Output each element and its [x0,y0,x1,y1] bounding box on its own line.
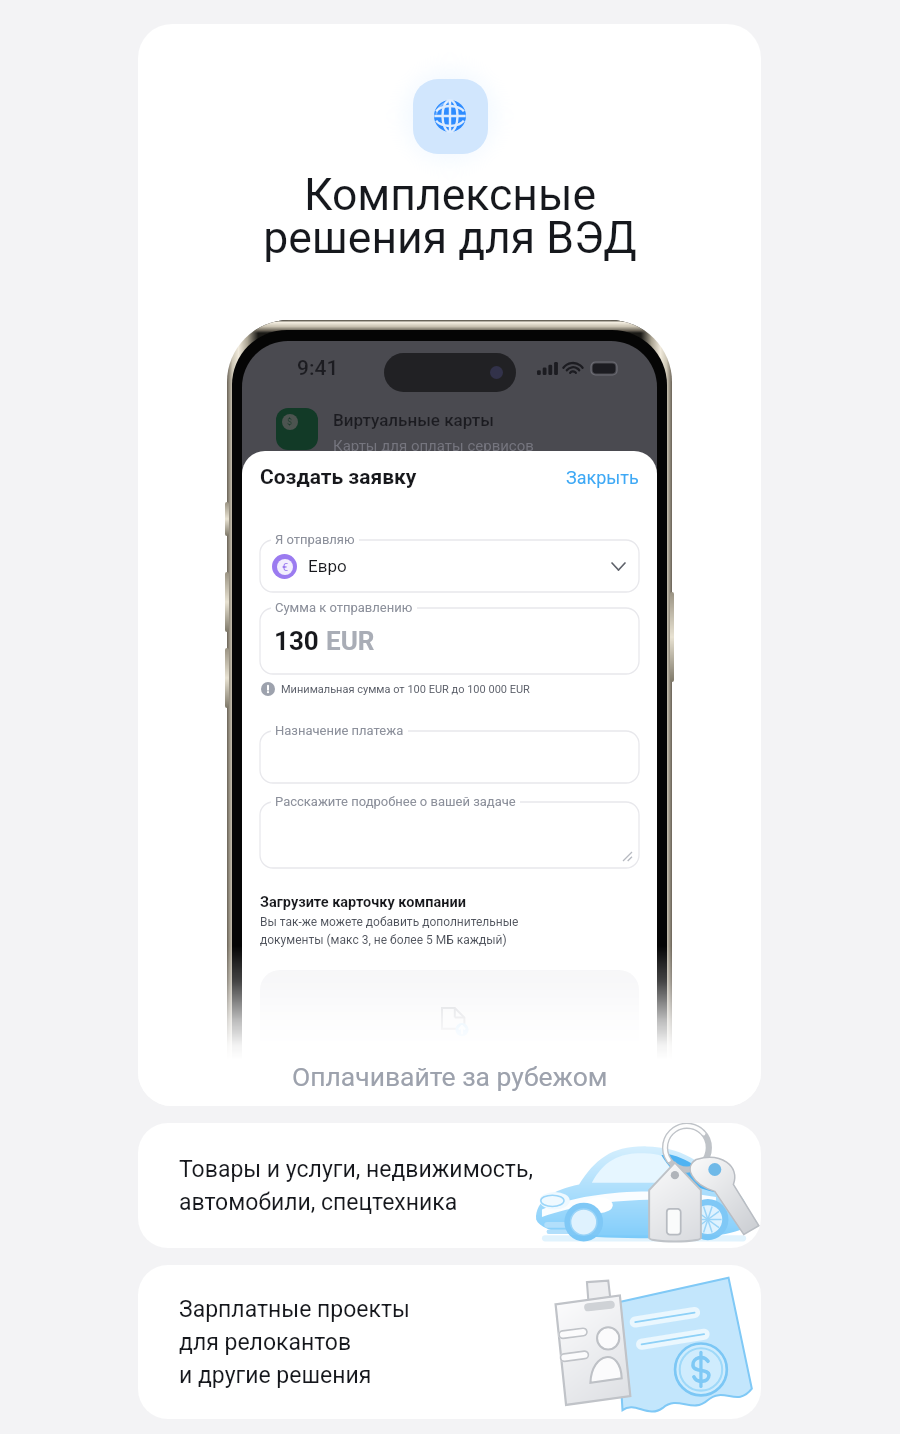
staticText: 130 [274,626,326,656]
staticText: Карты для оплаты сервисов [333,437,534,455]
staticText: Евро [308,556,347,576]
staticText: Виртуальные карты [333,410,494,430]
staticText: Минимальная сумма от 100 EUR до 100 000 … [281,683,530,696]
staticText: Создать заявку [260,465,417,490]
staticText: Вы так-же можете добавить дополнительные… [260,915,519,947]
button[interactable]: Товары и услуги, недвижимость, автомобил… [138,1123,761,1248]
staticText: $ [287,417,293,428]
button[interactable]: Зарплатные проекты для релокантов и друг… [138,1265,761,1419]
staticText: 9:41 [297,356,339,381]
staticText: Расскажите подробнее о вашей задаче [275,794,516,809]
staticText: Сумма к отправлению [275,600,413,615]
staticText: Зарплатные проекты для релокантов и друг… [179,1296,410,1389]
staticText: € [282,561,289,574]
staticText: Комплексные решения для ВЭД [263,169,637,264]
staticText: EUR [326,626,375,656]
staticText: Товары и услуги, недвижимость, автомобил… [179,1156,533,1216]
other: Upload document [434,1004,474,1044]
button[interactable]: Закрыть [566,467,639,488]
staticText: Я отправляю [275,532,355,547]
staticText: Назначение платежа [275,723,404,738]
staticText: Оплачивайте за рубежом [292,1061,608,1092]
staticText: Загрузите карточку компании [260,894,466,911]
other: Globe [434,100,466,132]
